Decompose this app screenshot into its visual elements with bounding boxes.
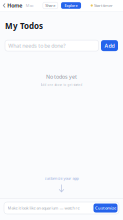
staticText: My Todos <box>5 20 43 31</box>
button[interactable]: Make it look like an aquarium — watch re <box>0 199 123 220</box>
button[interactable]: Share <box>43 2 58 9</box>
staticText: Add <box>104 42 114 49</box>
button[interactable]: Add <box>101 40 118 51</box>
button[interactable]: customize your app <box>44 176 78 181</box>
staticText: No todos yet <box>46 73 77 80</box>
button[interactable]: Home <box>0 0 24 11</box>
staticText: What needs to be done? <box>8 42 65 49</box>
staticText: Make it look like an aquarium — watch re <box>7 205 79 211</box>
staticText: Add one above to get started <box>40 83 82 87</box>
staticText: Mac <box>26 3 34 8</box>
staticText: customize your app <box>44 176 78 181</box>
staticText: Start timer <box>94 3 113 8</box>
staticText: Explore <box>64 3 77 8</box>
staticText: Customize <box>95 205 116 211</box>
button[interactable]: Explore <box>61 2 81 9</box>
staticText: Home <box>7 2 22 9</box>
button[interactable]: Start timer <box>89 1 123 10</box>
button[interactable]: Customize <box>93 203 117 212</box>
button[interactable]: Mac <box>24 1 35 10</box>
staticText: Share <box>45 3 55 8</box>
